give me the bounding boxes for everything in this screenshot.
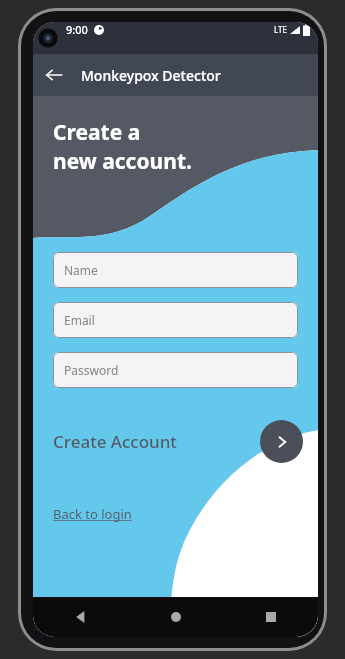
button[interactable]: Create account, continue [260,420,303,463]
button[interactable]: Home [128,597,223,637]
button[interactable]: Back [33,54,75,96]
button[interactable]: Password [53,352,298,388]
staticText: Monkeypox Detector [81,66,221,85]
staticText: LTE [274,24,287,35]
button[interactable]: Recents [223,597,318,637]
staticText: 9:00 [66,22,88,37]
button[interactable]: Back [33,597,128,637]
button[interactable]: Create Account [53,430,177,453]
button[interactable]: Back to login [53,505,132,523]
staticText: Password [64,362,119,378]
staticText: Create a [53,118,141,147]
staticText: new account. [53,147,192,176]
staticText: Email [64,312,95,328]
button[interactable]: Email [53,302,298,338]
button[interactable]: Name [53,252,298,288]
staticText: Name [64,262,98,278]
